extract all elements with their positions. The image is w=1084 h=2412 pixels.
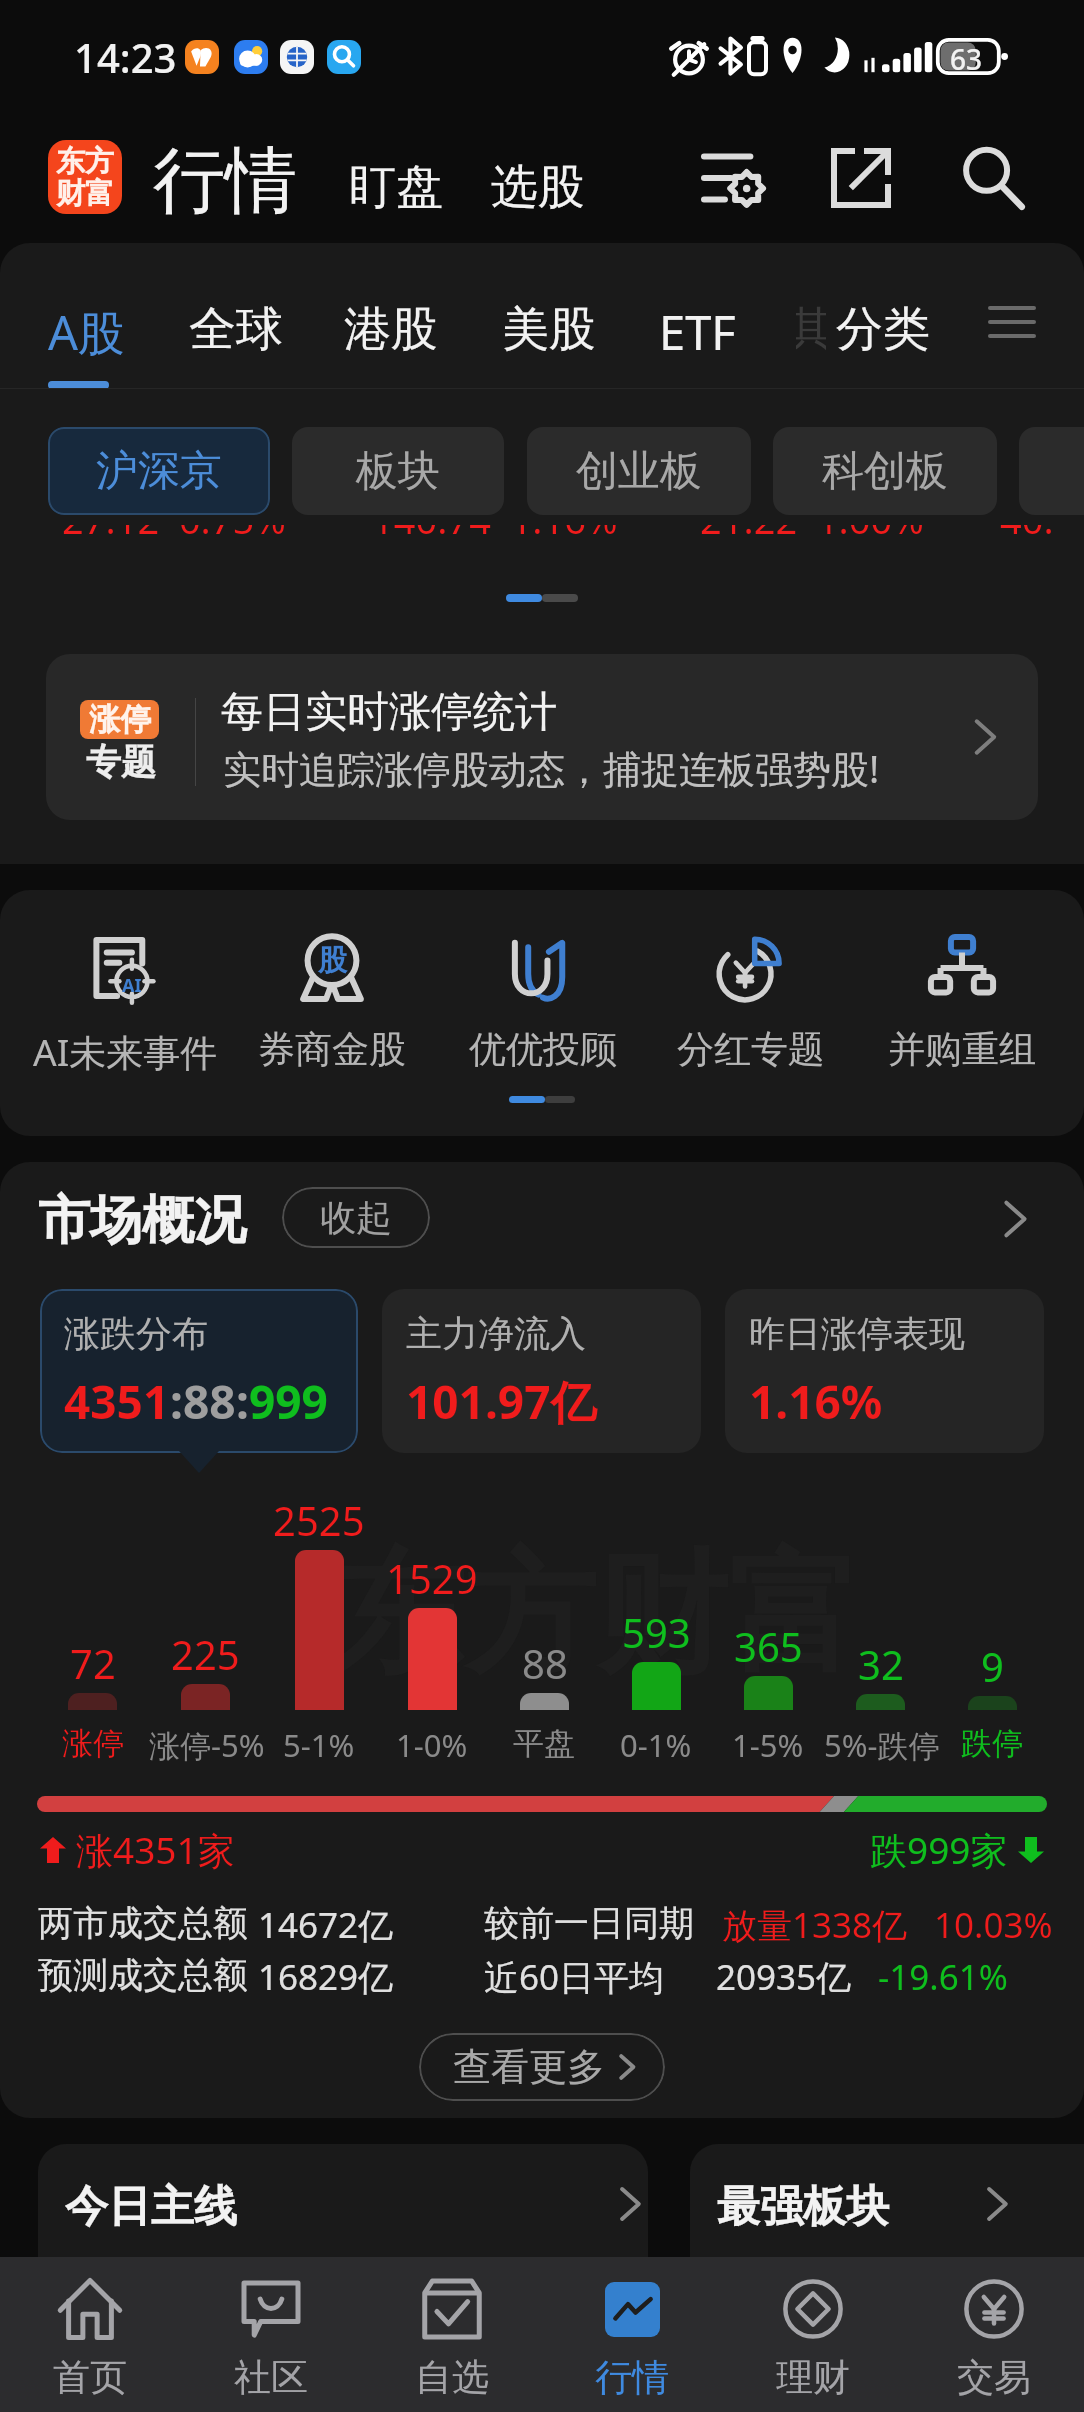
button[interactable]: 涨跌分布 (40, 1289, 358, 1453)
staticText: 收起 (320, 1195, 392, 1240)
staticText: 全球 (189, 300, 283, 359)
button[interactable]: 东方财富 (48, 140, 122, 214)
button[interactable]: 科创板 (773, 427, 997, 515)
button[interactable]: 搜索 (950, 135, 1036, 221)
button[interactable]: 今日主线 (38, 2144, 648, 2314)
staticText: 101.97亿 (406, 1370, 597, 1433)
staticText: 两市成交总额 (38, 1901, 248, 1945)
button[interactable]: 行情 (153, 136, 297, 227)
button[interactable]: 分红专题 (643, 918, 859, 1078)
staticText: -19.61% (878, 1953, 1008, 2001)
button[interactable]: 更多 (990, 1194, 1040, 1244)
staticText: 88 (183, 1370, 236, 1433)
staticText: 涨停-5% (149, 1724, 262, 1766)
staticText: 并购重组 (888, 1026, 1036, 1073)
button[interactable]: 查看更多 (453, 2033, 643, 2101)
button[interactable]: 分享 (818, 135, 904, 221)
staticText: AI未来事件 (33, 1026, 218, 1077)
staticText: 1.16% (749, 1370, 883, 1433)
staticText: 365 (734, 1619, 803, 1673)
button[interactable]: 交易 (904, 2257, 1084, 2412)
staticText: 板块 (356, 445, 440, 498)
staticText: 行情 (153, 136, 297, 227)
staticText: 预测成交总额 (38, 1953, 248, 1997)
staticText: 40. (1000, 525, 1054, 526)
button[interactable]: 并购重组 (854, 918, 1070, 1078)
staticText: 63 (950, 40, 983, 78)
button[interactable]: 港股 (344, 300, 438, 359)
staticText: 首页 (53, 2354, 127, 2401)
staticText: 沪深京 (96, 445, 222, 498)
staticText: 5-1% (283, 1724, 355, 1766)
button[interactable]: 主力净流入 (382, 1289, 701, 1453)
staticText: 140.74 1.16% (372, 525, 618, 526)
staticText: 88 (522, 1636, 568, 1690)
staticText: 每日实时涨停统计 (221, 686, 557, 739)
button[interactable]: 涨停 (46, 654, 1038, 820)
staticText: 股 (318, 942, 347, 979)
staticText: 9 (981, 1639, 1004, 1693)
staticText: 27.12 0.75% (62, 525, 286, 526)
staticText: 分红专题 (677, 1026, 825, 1073)
button[interactable]: 美股 (502, 300, 596, 359)
staticText: ETF (659, 300, 736, 364)
staticText: 实时追踪涨停股动态，捕捉连板强势股! (223, 742, 880, 794)
button[interactable]: 优优投顾 (435, 918, 651, 1078)
button[interactable]: 沪深京 (48, 427, 270, 515)
staticText: 选股 (491, 158, 585, 217)
staticText: 涨停 (89, 700, 151, 739)
button[interactable]: 全球 (189, 300, 283, 359)
staticText: 行情 (595, 2354, 669, 2401)
button[interactable]: 首页 (0, 2257, 180, 2412)
button[interactable]: 分类 (836, 300, 930, 359)
staticText: 专题 (86, 740, 156, 784)
staticText: 盯盘 (349, 158, 443, 217)
staticText: 理财 (776, 2354, 850, 2401)
button[interactable]: 设置 (690, 135, 776, 221)
staticText: 东方 财富 (56, 143, 114, 212)
button[interactable]: 理财 (723, 2257, 903, 2412)
staticText: 近60日平均 (484, 1953, 665, 2001)
staticText: 优优投顾 (469, 1026, 617, 1073)
staticText: 1529 (386, 1551, 478, 1605)
button[interactable]: 更多分类 (978, 291, 1046, 353)
staticText: 科创板 (822, 445, 948, 498)
staticText: 主力净流入 (406, 1311, 586, 1356)
staticText: 10.03% (934, 1901, 1053, 1949)
staticText: 20935亿 (716, 1953, 852, 2001)
button[interactable]: 最强板块 (690, 2144, 1084, 2314)
staticText: 昨日涨停表现 (749, 1311, 965, 1356)
button[interactable]: 板块 (292, 427, 504, 515)
staticText: 港股 (344, 300, 438, 359)
staticText: 涨4351家 (76, 1824, 235, 1875)
button[interactable]: 盯盘 (349, 158, 443, 217)
button[interactable]: 社区 (181, 2257, 361, 2412)
button[interactable]: 昨日涨停表现 (725, 1289, 1044, 1453)
staticText: : (236, 1370, 249, 1433)
staticText: 平盘 (513, 1724, 575, 1763)
staticText: 东方财富 (332, 1532, 860, 1698)
staticText: 社区 (234, 2354, 308, 2401)
button[interactable]: 创业板 (527, 427, 751, 515)
staticText: 跌999家 (870, 1824, 1008, 1875)
button[interactable]: A股 (48, 300, 126, 364)
staticText: : (170, 1370, 183, 1433)
staticText: 涨跌分布 (64, 1311, 208, 1356)
button[interactable]: AI (17, 918, 233, 1078)
button[interactable]: 自选 (362, 2257, 542, 2412)
staticText: A股 (48, 300, 126, 364)
button[interactable]: 收起 (282, 1187, 430, 1248)
staticText: 14672亿 (258, 1901, 394, 1949)
staticText: 2525 (273, 1493, 365, 1547)
button[interactable]: 其 (796, 300, 826, 356)
button[interactable]: ETF (659, 300, 736, 364)
staticText: 市场概况 (38, 1188, 246, 1254)
staticText: 最强板块 (717, 2180, 889, 2234)
staticText: 225 (171, 1627, 240, 1681)
staticText: 1-5% (732, 1724, 804, 1766)
staticText: 创业板 (576, 445, 702, 498)
button[interactable]: 行情 (542, 2257, 722, 2412)
button[interactable]: 选股 (491, 158, 585, 217)
button[interactable]: 股 (224, 918, 440, 1078)
